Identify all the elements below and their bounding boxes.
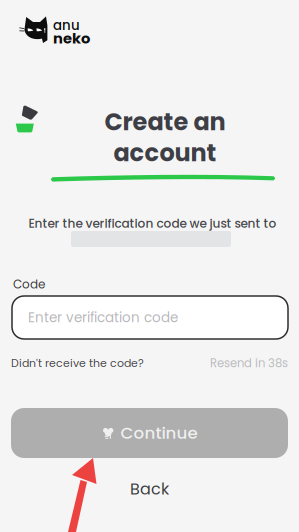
staticText: Enter the verification code we just sent… bbox=[28, 215, 276, 232]
staticText: neko bbox=[53, 28, 90, 48]
staticText: Continue bbox=[120, 421, 197, 445]
button[interactable]: Back bbox=[0, 478, 299, 500]
staticText: Resend in 38s bbox=[210, 355, 288, 371]
staticText: Back bbox=[130, 478, 169, 500]
staticText: anu bbox=[53, 16, 80, 35]
staticText: Code bbox=[13, 276, 45, 293]
staticText: Enter verification code bbox=[28, 308, 178, 327]
staticText: Didn't receive the code? bbox=[11, 355, 144, 371]
button[interactable]: Continue bbox=[11, 408, 288, 458]
staticText: account bbox=[113, 136, 216, 170]
staticText: Create an bbox=[104, 105, 225, 139]
